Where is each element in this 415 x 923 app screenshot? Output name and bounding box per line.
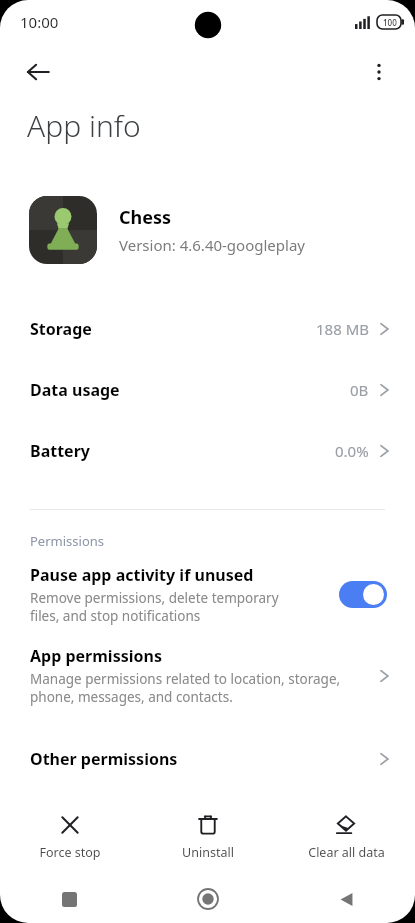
button[interactable]: Uninstall xyxy=(139,801,277,873)
staticText: Pause app activity if unused xyxy=(30,564,254,586)
staticText: Manage permissions related to location, … xyxy=(30,670,341,706)
button[interactable]: Pause app activity if unused xyxy=(0,562,415,635)
staticText: Force stop xyxy=(39,844,101,861)
button[interactable]: Force stop xyxy=(0,801,139,873)
staticText: Data usage xyxy=(30,379,350,401)
staticText: No xyxy=(348,810,369,830)
staticText: 0.0% xyxy=(335,441,369,461)
button[interactable]: Storage xyxy=(0,298,415,359)
button[interactable]: Back xyxy=(16,50,60,94)
button[interactable]: Recent apps xyxy=(0,875,139,923)
staticText: Storage xyxy=(30,318,316,340)
staticText: 10:00 xyxy=(20,12,59,32)
staticText: App permissions xyxy=(30,645,162,667)
staticText: 0B xyxy=(350,380,369,400)
button[interactable]: Back xyxy=(277,875,415,923)
button[interactable]: Pause app activity toggle xyxy=(339,581,387,608)
staticText: Clear all data xyxy=(308,844,385,861)
staticText: Battery xyxy=(30,440,335,462)
button[interactable]: Notifications xyxy=(0,789,415,850)
button[interactable]: Home xyxy=(139,875,277,923)
button[interactable]: Other permissions xyxy=(0,728,415,789)
staticText: Remove permissions, delete temporary fil… xyxy=(30,589,279,625)
staticText: Permissions xyxy=(30,532,105,550)
button[interactable]: App permissions xyxy=(0,645,415,706)
staticText: App info xyxy=(27,105,141,146)
staticText: Uninstall xyxy=(182,844,234,861)
button[interactable]: Data usage xyxy=(0,359,415,420)
button[interactable]: Clear all data xyxy=(277,801,415,873)
staticText: 100 xyxy=(383,17,397,28)
staticText: Notifications xyxy=(30,809,348,831)
button[interactable]: More options xyxy=(357,50,401,94)
staticText: 188 MB xyxy=(316,319,369,339)
staticText: Chess xyxy=(119,205,172,230)
staticText: Other permissions xyxy=(30,748,377,770)
button[interactable]: Battery xyxy=(0,420,415,481)
staticText: Version: 4.6.40-googleplay xyxy=(119,235,305,255)
